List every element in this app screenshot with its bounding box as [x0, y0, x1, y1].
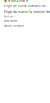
staticText: Elige de nuevo la versión de — [4, 10, 50, 14]
staticText: Elige de nuevo la versión de — [4, 4, 46, 8]
staticText: Modo Sombra — [4, 24, 23, 27]
staticText: Elige de nuevo la versión de — [4, 0, 28, 2]
staticText: Modo Sombra — [4, 20, 17, 22]
staticText: Modo Sombra — [4, 16, 14, 18]
